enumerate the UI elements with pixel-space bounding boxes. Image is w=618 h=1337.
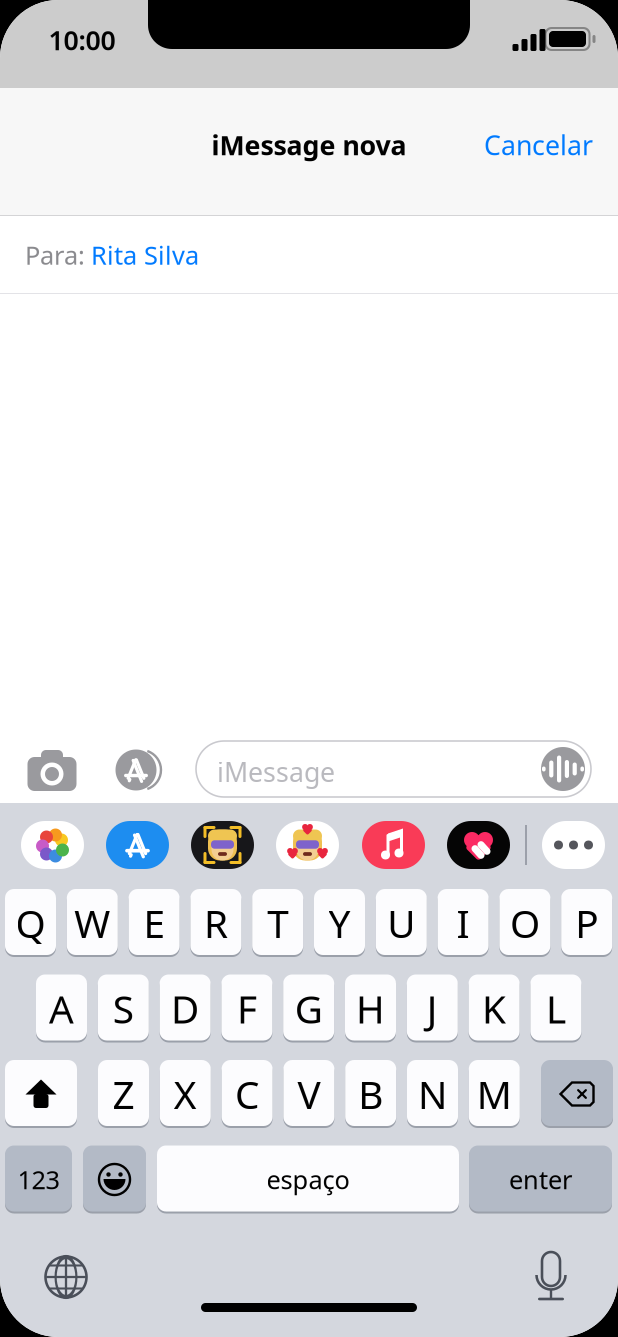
button[interactable]: Emoji [83,1145,146,1213]
staticText: T [267,897,288,949]
button[interactable]: I [438,889,489,957]
button[interactable]: Cancelar [443,115,593,175]
staticText: Rita Silva [91,238,199,272]
button[interactable]: F [221,974,272,1042]
button[interactable]: W [67,889,118,957]
button[interactable]: V [283,1060,334,1128]
button[interactable]: Memoji [191,821,254,869]
staticText: C [235,1068,259,1120]
staticText: K [482,983,506,1034]
staticText: U [387,897,415,949]
button[interactable]: Next keyboard [38,1249,94,1305]
staticText: R [204,897,228,949]
button[interactable]: Memoji stickers [276,821,339,869]
staticText: E [144,897,165,949]
button[interactable]: E [129,889,180,957]
staticText: 10:00 [48,22,115,58]
button[interactable]: S [98,974,149,1042]
button[interactable]: C [222,1060,273,1128]
button[interactable]: Music [362,821,425,869]
button[interactable]: espaço [157,1145,459,1213]
button[interactable]: Camera [21,746,83,804]
button[interactable]: App Store [106,821,169,869]
staticText: I [457,897,470,949]
button[interactable]: Dictation [523,1249,579,1305]
button[interactable]: N [407,1060,458,1128]
staticText: W [74,897,110,949]
button[interactable]: B [345,1060,396,1128]
button[interactable]: L [530,974,581,1042]
staticText: V [297,1068,320,1120]
button[interactable]: X [160,1060,211,1128]
button[interactable]: R [190,889,241,957]
button[interactable]: D [160,974,211,1042]
button[interactable]: Fitness [447,821,510,869]
button[interactable]: O [499,889,550,957]
button[interactable]: 123 [5,1145,72,1213]
button[interactable]: More apps [542,821,605,869]
staticText: iMessage nova [211,127,406,163]
staticText: enter [509,1163,572,1196]
button[interactable]: G [283,974,334,1042]
button[interactable]: Para: [0,216,618,294]
staticText: L [546,983,566,1034]
staticText: espaço [266,1163,349,1196]
staticText: Cancelar [484,127,593,163]
button[interactable]: Photos [21,821,84,869]
button[interactable]: iMessage [196,741,591,797]
staticText: H [356,983,385,1034]
button[interactable]: Delete [541,1060,613,1128]
button[interactable]: Shift [5,1060,77,1128]
button[interactable]: J [407,974,458,1042]
staticText: S [113,983,134,1034]
button[interactable]: enter [469,1145,612,1213]
button[interactable]: A [36,974,87,1042]
button[interactable]: K [469,974,520,1042]
staticText: Para: [25,238,85,272]
button[interactable]: Z [98,1060,149,1128]
staticText: X [174,1068,197,1120]
button[interactable]: U [376,889,427,957]
button[interactable]: T [252,889,303,957]
staticText: Q [15,897,45,949]
staticText: D [171,983,199,1034]
staticText: G [295,983,323,1034]
staticText: O [510,897,540,949]
staticText: B [358,1068,383,1120]
staticText: N [418,1068,447,1120]
staticText: F [237,983,257,1034]
staticText: Y [328,897,350,949]
staticText: iMessage [217,754,335,789]
button[interactable]: Y [314,889,365,957]
button[interactable]: Q [5,889,56,957]
staticText: Z [112,1068,134,1120]
staticText: 123 [17,1163,59,1196]
staticText: M [477,1068,512,1120]
staticText: J [427,983,438,1034]
button[interactable]: H [345,974,396,1042]
button[interactable]: P [561,889,612,957]
staticText: P [575,897,598,949]
button[interactable]: App Store [105,741,167,799]
button[interactable]: M [469,1060,520,1128]
staticText: A [49,983,74,1034]
